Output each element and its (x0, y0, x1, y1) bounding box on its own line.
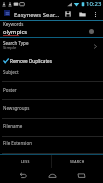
button[interactable]: LESS (0, 155, 51, 168)
button[interactable]: Recents (74, 168, 89, 183)
button[interactable]: Save (62, 8, 74, 20)
button[interactable]: Open folder (76, 8, 88, 20)
staticText: LESS (21, 159, 30, 164)
staticText: 10:23 (86, 0, 102, 8)
button[interactable]: Remove Duplicates (0, 55, 103, 66)
button[interactable]: Newsgroups (0, 102, 103, 119)
staticText: Easynews Sear... (14, 11, 60, 19)
staticText: Simple (3, 45, 17, 51)
staticText: Newsgroups (3, 105, 30, 111)
staticText: File Extension (3, 140, 33, 146)
button[interactable]: Back (16, 168, 31, 183)
staticText: Filename (3, 123, 23, 129)
button[interactable]: Subject (0, 66, 103, 83)
button[interactable]: More options (89, 8, 101, 20)
staticText: Search Type (3, 40, 29, 46)
staticText: Poster (3, 87, 17, 93)
button[interactable]: Home (45, 168, 60, 183)
staticText: olympics (3, 28, 27, 36)
button[interactable]: Poster (0, 84, 103, 101)
staticText: SEARCH (70, 159, 85, 164)
staticText: Keywords (3, 21, 24, 27)
staticText: Subject (3, 69, 19, 75)
button[interactable]: Filename (0, 120, 103, 137)
button[interactable]: File Extension (0, 137, 103, 154)
button[interactable]: Clear text (89, 29, 94, 34)
staticText: Remove Duplicates (10, 58, 53, 64)
button[interactable]: SEARCH (52, 155, 103, 168)
button[interactable]: Search Type (0, 39, 103, 54)
